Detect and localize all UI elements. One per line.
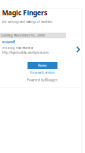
staticText: Powered by Blogger.	[27, 78, 58, 82]
staticText: http://byamushka.wordpress.com	[2, 51, 49, 54]
button[interactable]: http://byamushka.wordpress.com	[0, 51, 49, 54]
button[interactable]: View web version	[30, 70, 55, 74]
staticText: Magic Fingers	[2, 8, 47, 17]
button[interactable]: Home	[27, 62, 57, 69]
staticText: This blog now resides at	[2, 46, 33, 50]
staticText: moved!	[2, 39, 15, 44]
staticText: View web version	[30, 70, 55, 74]
button[interactable]: moved!	[0, 39, 15, 44]
staticText: the writings and makings of mushka t.	[2, 20, 53, 24]
staticText: Home	[38, 63, 47, 67]
button[interactable]: Next page	[76, 46, 80, 53]
staticText: Sunday, November 02, 2008	[1, 34, 45, 37]
